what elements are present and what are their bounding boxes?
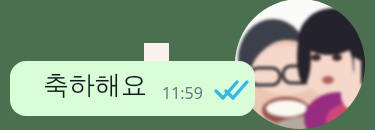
other: Profile photo	[235, 0, 365, 129]
staticText: 축하해요	[43, 69, 147, 102]
staticText: 11:59	[162, 82, 203, 104]
button[interactable]: 축하해요	[10, 61, 255, 116]
